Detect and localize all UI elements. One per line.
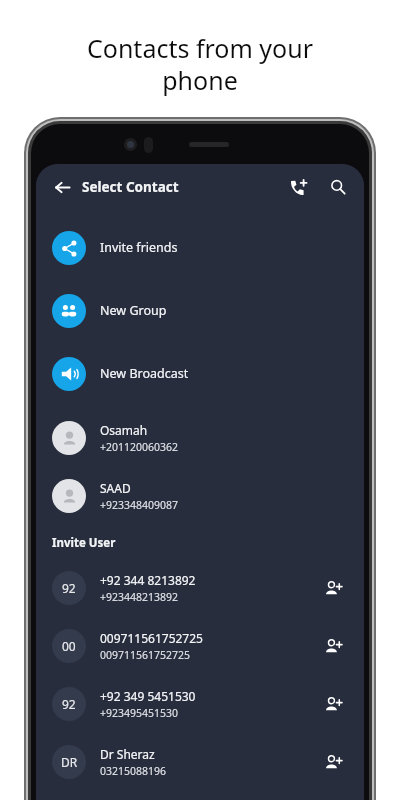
- staticText: Osamah: [100, 422, 148, 438]
- button[interactable]: Search: [322, 171, 354, 203]
- staticText: 009711561752725: [100, 648, 191, 662]
- staticText: Contacts from your phone: [0, 31, 400, 97]
- staticText: +201120060362: [100, 440, 179, 454]
- button[interactable]: SAAD: [36, 467, 364, 525]
- staticText: 009711561752725: [100, 630, 203, 646]
- button[interactable]: Invite: [318, 631, 348, 661]
- button[interactable]: 00: [36, 617, 364, 675]
- button[interactable]: Osamah: [36, 409, 364, 467]
- button[interactable]: New Group: [36, 279, 364, 342]
- staticText: +923495451530: [100, 706, 179, 720]
- staticText: +92 344 8213892: [100, 572, 196, 588]
- staticText: Invite User: [52, 535, 116, 551]
- staticText: +923448213892: [100, 590, 179, 604]
- button[interactable]: 92: [36, 559, 364, 617]
- staticText: 92: [62, 696, 76, 712]
- staticText: 92: [62, 580, 76, 596]
- button[interactable]: DR: [36, 733, 364, 791]
- staticText: Select Contact: [82, 178, 179, 196]
- staticText: SAAD: [100, 480, 131, 496]
- staticText: New Broadcast: [100, 365, 189, 382]
- button[interactable]: Add contact: [282, 171, 314, 203]
- staticText: +923348409087: [100, 498, 179, 512]
- button[interactable]: Invite friends: [36, 216, 364, 279]
- staticText: Dr Sheraz: [100, 746, 155, 762]
- button[interactable]: Back: [46, 171, 78, 203]
- staticText: New Group: [100, 302, 167, 319]
- staticText: 03215088196: [100, 764, 167, 778]
- button[interactable]: Invite: [318, 573, 348, 603]
- staticText: Invite friends: [100, 239, 178, 256]
- staticText: 00: [62, 638, 76, 654]
- button[interactable]: 92: [36, 675, 364, 733]
- staticText: DR: [61, 754, 78, 770]
- button[interactable]: Invite: [318, 689, 348, 719]
- button[interactable]: Invite: [318, 747, 348, 777]
- staticText: +92 349 5451530: [100, 688, 196, 704]
- button[interactable]: New Broadcast: [36, 342, 364, 405]
